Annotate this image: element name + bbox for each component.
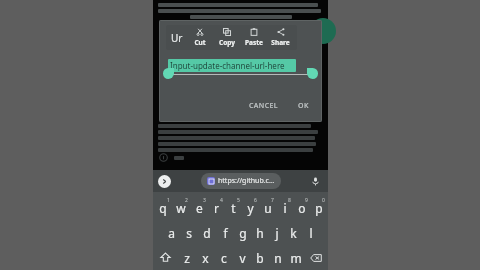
button[interactable]: c	[215, 245, 233, 270]
button[interactable]: Copy	[213, 27, 240, 48]
staticText: 4	[220, 197, 223, 204]
staticText: z	[184, 250, 190, 266]
button[interactable]: w	[172, 195, 190, 220]
staticText: 0	[322, 197, 325, 204]
staticText: v	[239, 250, 246, 266]
button[interactable]: Backspace	[305, 245, 327, 270]
staticText: Share	[271, 38, 290, 47]
staticText: t	[231, 200, 236, 216]
staticText: r	[214, 200, 219, 216]
button[interactable]: v	[233, 245, 251, 270]
button[interactable]: y	[242, 195, 259, 220]
button[interactable]: https://github.c…	[201, 173, 281, 189]
button[interactable]: u	[259, 195, 276, 220]
staticText: m	[290, 250, 302, 266]
staticText: 5	[237, 197, 240, 204]
staticText: p	[315, 200, 323, 216]
staticText: q	[159, 200, 167, 216]
staticText: 3	[203, 197, 206, 204]
staticText: Paste	[245, 38, 263, 47]
button[interactable]: g	[234, 220, 251, 245]
staticText: x	[202, 250, 209, 266]
button[interactable]: OK	[295, 99, 312, 113]
button[interactable]: Paste	[240, 27, 267, 48]
button[interactable]: j	[268, 220, 285, 245]
staticText: 7	[271, 197, 274, 204]
button[interactable]: Voice input	[308, 174, 322, 188]
button[interactable]: CANCEL	[246, 99, 281, 113]
button[interactable]: m	[287, 245, 305, 270]
staticText: i	[283, 200, 287, 216]
button[interactable]: h	[251, 220, 268, 245]
button[interactable]: Share	[267, 27, 294, 48]
staticText: Cut	[194, 38, 206, 47]
staticText: c	[221, 250, 227, 266]
staticText: h	[256, 225, 264, 241]
staticText: https://github.c…	[218, 176, 275, 186]
staticText: l	[309, 225, 313, 241]
staticText: y	[247, 200, 254, 216]
staticText: a	[168, 225, 175, 241]
button[interactable]: Expand toolbar	[158, 175, 171, 188]
staticText: Input-update-channel-url-here	[170, 60, 285, 71]
staticText: j	[275, 225, 279, 241]
button[interactable]: s	[180, 220, 198, 245]
staticText: b	[256, 250, 264, 266]
staticText: 1	[167, 197, 170, 204]
button[interactable]: Selection start handle	[163, 68, 174, 79]
staticText: n	[274, 250, 282, 266]
button[interactable]: e	[190, 195, 208, 220]
staticText: o	[298, 200, 306, 216]
staticText: s	[186, 225, 192, 241]
button[interactable]: q	[154, 195, 172, 220]
staticText: k	[290, 225, 297, 241]
staticText: d	[203, 225, 211, 241]
button[interactable]: r	[208, 195, 225, 220]
staticText: Ur	[171, 31, 183, 45]
staticText: 6	[254, 197, 257, 204]
button[interactable]: x	[196, 245, 215, 270]
staticText: g	[239, 225, 247, 241]
staticText: w	[176, 200, 186, 216]
button[interactable]: a	[162, 220, 180, 245]
staticText: f	[223, 225, 228, 241]
button[interactable]: Shift	[154, 245, 177, 270]
button[interactable]: d	[198, 220, 216, 245]
staticText: CANCEL	[249, 101, 278, 111]
button[interactable]: n	[269, 245, 287, 270]
button[interactable]: l	[302, 220, 319, 245]
staticText: OK	[298, 101, 309, 111]
button[interactable]: z	[177, 245, 196, 270]
button[interactable]: Cut	[187, 27, 213, 48]
button[interactable]: Input-update-channel-url-here	[168, 59, 296, 72]
staticText: 9	[305, 197, 308, 204]
button[interactable]: i	[276, 195, 293, 220]
button[interactable]: o	[293, 195, 310, 220]
button[interactable]: t	[225, 195, 242, 220]
staticText: e	[196, 200, 203, 216]
button[interactable]: b	[251, 245, 269, 270]
staticText: 8	[288, 197, 291, 204]
staticText: 2	[185, 197, 188, 204]
button[interactable]: k	[285, 220, 302, 245]
button[interactable]: p	[310, 195, 327, 220]
button[interactable]: f	[216, 220, 234, 245]
staticText: u	[264, 200, 272, 216]
button[interactable]: Selection end handle	[307, 68, 318, 79]
staticText: Copy	[219, 38, 235, 47]
